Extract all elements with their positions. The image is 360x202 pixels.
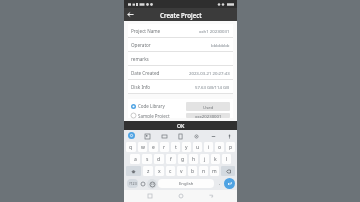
button[interactable]: i	[204, 142, 213, 152]
button[interactable]: Settings	[192, 132, 200, 140]
button[interactable]: o	[215, 142, 224, 152]
button[interactable]: j	[200, 154, 209, 164]
staticText: Date Created	[131, 70, 160, 76]
button[interactable]: Used	[186, 102, 230, 111]
staticText: Code Library	[138, 103, 165, 109]
button[interactable]: xxx20230001	[186, 113, 230, 118]
button[interactable]: t	[171, 142, 180, 152]
button[interactable]: Stickers	[143, 132, 151, 140]
button[interactable]: a	[130, 154, 140, 164]
button[interactable]: Enter	[224, 178, 235, 189]
button[interactable]: e	[149, 142, 158, 152]
button[interactable]: k	[211, 154, 220, 164]
staticText: x	[158, 168, 161, 175]
button[interactable]: v	[177, 166, 186, 176]
staticText: remarks	[131, 56, 149, 62]
staticText: i	[208, 144, 210, 151]
button[interactable]: Back	[124, 8, 137, 21]
staticText: j	[204, 156, 206, 163]
button[interactable]: Home	[176, 191, 186, 201]
staticText: s	[146, 156, 149, 163]
button[interactable]: s	[142, 154, 152, 164]
button[interactable]: ?123	[127, 179, 138, 188]
button[interactable]: Project Name	[128, 24, 233, 38]
button[interactable]: Sample Project	[128, 113, 233, 118]
button[interactable]: p	[226, 142, 235, 152]
button[interactable]: Operator	[128, 38, 233, 52]
button[interactable]: Back	[206, 191, 216, 201]
staticText: p	[229, 144, 233, 151]
button[interactable]: c	[166, 166, 175, 176]
button[interactable]: l	[222, 154, 231, 164]
staticText: OK	[177, 122, 185, 129]
staticText: Project Name	[131, 28, 161, 34]
staticText: English	[179, 181, 194, 187]
staticText: t	[175, 144, 177, 151]
staticText: Disk Info	[131, 84, 151, 90]
staticText: w	[141, 144, 145, 151]
staticText: Used	[203, 104, 214, 110]
staticText: xxh1 20230031	[199, 28, 230, 34]
button[interactable]: w	[138, 142, 147, 152]
button[interactable]: Recents	[145, 191, 155, 201]
button[interactable]: Keyboard settings	[128, 132, 135, 139]
button[interactable]: d	[154, 154, 164, 164]
button[interactable]: Backspace	[221, 166, 235, 176]
button[interactable]: n	[199, 166, 208, 176]
staticText: 2023-03-21 20:27:43	[189, 70, 230, 76]
staticText: h	[192, 156, 196, 163]
staticText: n	[202, 168, 206, 175]
button[interactable]: Voice input	[225, 132, 233, 140]
button[interactable]: h	[189, 154, 198, 164]
staticText: o	[218, 144, 222, 151]
staticText: 57.63 GB/114 GB	[195, 84, 230, 90]
button[interactable]: Language	[139, 180, 147, 188]
staticText: e	[152, 144, 155, 151]
button[interactable]: OK	[124, 121, 237, 130]
staticText: Sample Project	[138, 113, 170, 118]
staticText: .	[219, 180, 221, 187]
button[interactable]: Emoji	[147, 179, 157, 189]
button[interactable]: Clipboard	[176, 132, 184, 140]
button[interactable]: GIF	[160, 132, 168, 140]
button[interactable]: u	[193, 142, 202, 152]
button[interactable]: remarks	[128, 52, 233, 66]
staticText: g	[181, 156, 185, 163]
button[interactable]: Disk Info	[128, 80, 233, 94]
staticText: f	[170, 156, 172, 163]
button[interactable]: b	[188, 166, 197, 176]
staticText: a	[134, 156, 137, 163]
button[interactable]: m	[210, 166, 219, 176]
button[interactable]: Code Library	[128, 99, 233, 113]
button[interactable]: English	[158, 179, 214, 188]
staticText: v	[180, 168, 183, 175]
staticText: r	[163, 144, 166, 151]
button[interactable]: y	[182, 142, 191, 152]
button[interactable]: Date Created	[128, 66, 233, 80]
staticText: c	[169, 168, 172, 175]
staticText: q	[129, 144, 133, 151]
staticText: k	[214, 156, 217, 163]
button[interactable]: q	[126, 142, 136, 152]
button[interactable]: z	[143, 166, 153, 176]
staticText: l	[226, 156, 228, 163]
staticText: xxx20230001	[195, 113, 222, 118]
staticText: b	[191, 168, 195, 175]
staticText: Operator	[131, 42, 151, 48]
button[interactable]: More	[209, 132, 217, 140]
button[interactable]: g	[178, 154, 187, 164]
staticText: u	[196, 144, 200, 151]
button[interactable]: f	[166, 154, 176, 164]
button[interactable]: Shift	[126, 166, 141, 176]
button[interactable]: x	[155, 166, 164, 176]
staticText: Create Project	[160, 11, 202, 19]
staticText: ?123	[129, 181, 137, 186]
button[interactable]: r	[160, 142, 169, 152]
staticText: y	[185, 144, 188, 151]
staticText: d	[157, 156, 161, 163]
staticText: m	[212, 168, 217, 175]
button[interactable]: Period	[215, 179, 224, 188]
staticText: z	[147, 168, 150, 175]
staticText: bbbbbbb	[211, 42, 230, 48]
